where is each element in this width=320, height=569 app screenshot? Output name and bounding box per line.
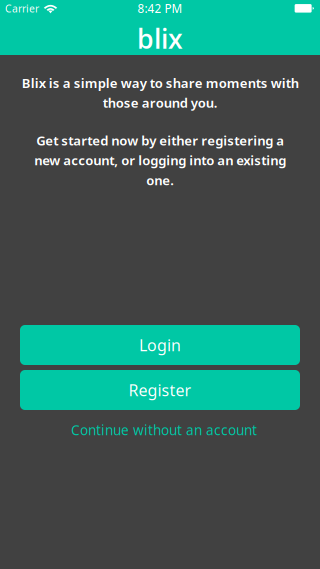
button[interactable]: Register bbox=[20, 370, 300, 410]
staticText: Carrier bbox=[5, 1, 39, 15]
staticText: blix bbox=[137, 20, 183, 57]
staticText: Login bbox=[139, 334, 181, 356]
button[interactable]: Continue without an account bbox=[20, 415, 300, 445]
staticText: Blix is a simple way to share moments wi… bbox=[21, 74, 298, 112]
staticText: Continue without an account bbox=[71, 421, 257, 439]
staticText: Register bbox=[128, 379, 191, 401]
staticText: 8:42 PM bbox=[137, 0, 182, 16]
button[interactable]: Login bbox=[20, 325, 300, 365]
staticText: Get started now by either registering a … bbox=[34, 132, 286, 189]
